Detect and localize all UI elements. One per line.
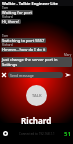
button[interactable]: Settings — [2, 130, 9, 137]
staticText: Waiting for port — [2, 10, 32, 15]
staticText: Hi, there! — [2, 19, 20, 24]
button[interactable]: Hmmm...how do I do it — [2, 47, 46, 52]
button[interactable]: Close — [0, 71, 8, 79]
staticText: 51 — [64, 130, 71, 138]
staticText: Just change the server port in Settings — [2, 57, 71, 67]
button[interactable]: Walkie - Talkie Engineer Lite — [0, 0, 73, 6]
button[interactable]: Just change the server port in Settings — [2, 57, 71, 67]
staticText: Tom — [2, 34, 9, 38]
staticText: Connected to 192.168.1.1 — [19, 132, 55, 136]
staticText: Send message — [10, 73, 34, 78]
button[interactable]: Hi, there! — [2, 19, 20, 24]
staticText: TALK — [32, 93, 42, 98]
staticText: Tom — [2, 6, 9, 10]
button[interactable]: Send message — [10, 72, 61, 78]
button[interactable]: TALK — [26, 85, 47, 106]
staticText: Walkie - Talkie Engineer Lite — [2, 1, 58, 6]
staticText: Switching to port 5557 — [2, 38, 45, 43]
staticText: Richard — [21, 115, 52, 126]
staticText: Richard — [2, 43, 13, 47]
staticText: Richard — [2, 15, 13, 19]
button[interactable]: Send — [63, 71, 73, 79]
button[interactable]: Switching to port 5557 — [2, 38, 45, 43]
button[interactable]: Waiting for port — [2, 10, 32, 15]
staticText: Mary — [64, 53, 72, 57]
staticText: Hmmm...how do I do it — [2, 47, 46, 52]
